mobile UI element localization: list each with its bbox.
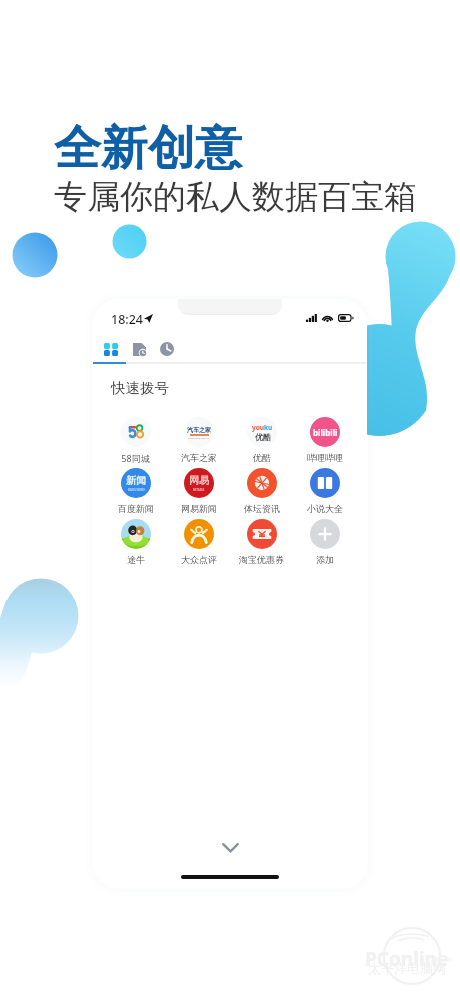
button[interactable]: 网易 bbox=[167, 468, 230, 519]
staticText: 快速拨号 bbox=[111, 379, 169, 397]
button[interactable]: bilibili bbox=[293, 417, 356, 468]
button[interactable]: 淘宝优惠券 bbox=[230, 519, 293, 570]
button[interactable]: 添加 bbox=[293, 519, 356, 570]
staticText: 小说大全 bbox=[307, 503, 343, 514]
staticText: 58同城 bbox=[121, 452, 150, 464]
button[interactable]: Call history bbox=[153, 340, 181, 358]
staticText: 优酷 bbox=[255, 432, 271, 442]
button[interactable]: 途牛 bbox=[104, 519, 167, 570]
staticText: PConline bbox=[365, 946, 449, 972]
button[interactable]: 体坛资讯 bbox=[230, 468, 293, 519]
staticText: 体坛资讯 bbox=[244, 503, 280, 514]
button[interactable]: Speed dial bbox=[97, 340, 125, 358]
staticText: 太平洋电脑网 bbox=[368, 960, 446, 976]
staticText: 全新创意 bbox=[54, 119, 242, 178]
staticText: 新闻 bbox=[126, 474, 146, 487]
staticText: 淘宝优惠券 bbox=[239, 554, 284, 565]
staticText: you bbox=[252, 423, 264, 432]
button[interactable]: 58同城 bbox=[104, 417, 167, 468]
staticText: 优酷 bbox=[253, 452, 271, 463]
staticText: com.cn bbox=[428, 955, 452, 965]
staticText: 途牛 bbox=[127, 554, 145, 565]
staticText: autohome.com.cn bbox=[188, 436, 210, 439]
staticText: 专属你的私人数据百宝箱 bbox=[54, 176, 417, 218]
button[interactable]: 小说大全 bbox=[293, 468, 356, 519]
button[interactable]: 汽车之家 bbox=[167, 417, 230, 468]
staticText: 汽车之家 bbox=[187, 426, 211, 434]
staticText: 添加 bbox=[316, 554, 334, 565]
staticText: 百度新闻 bbox=[118, 503, 154, 514]
button[interactable]: Recent bbox=[125, 340, 153, 358]
staticText: bilibili bbox=[313, 427, 338, 438]
staticText: 汽车之家 bbox=[181, 452, 217, 463]
staticText: 18:24 bbox=[111, 311, 144, 325]
staticText: NETEASE bbox=[193, 488, 205, 492]
staticText: 大众点评 bbox=[181, 554, 217, 565]
button[interactable]: you bbox=[230, 417, 293, 468]
staticText: 哔哩哔哩 bbox=[307, 452, 343, 463]
staticText: BAIDU NEWS bbox=[128, 488, 145, 492]
staticText: 网易新闻 bbox=[181, 503, 217, 514]
staticText: 网易 bbox=[189, 474, 209, 487]
staticText: ku bbox=[264, 423, 273, 432]
button[interactable]: 新闻 bbox=[104, 468, 167, 519]
button[interactable]: 大众点评 bbox=[167, 519, 230, 570]
